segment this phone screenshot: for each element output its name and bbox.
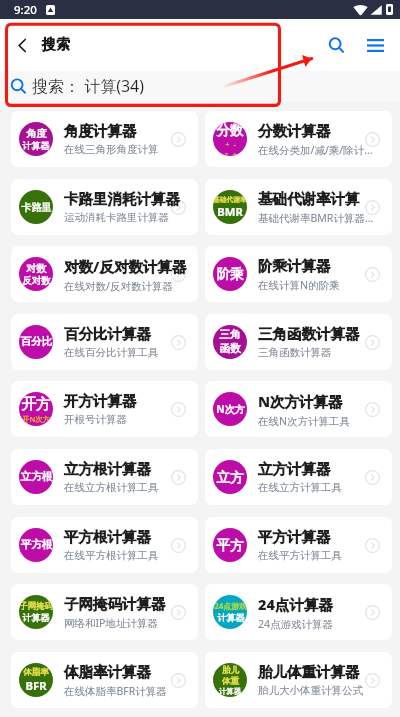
staticText: 24点游戏计算器 — [258, 617, 334, 631]
staticText: 在线立方根计算工具 — [64, 481, 159, 494]
staticText: 反对数 — [22, 275, 51, 287]
staticText: 子网掩码 — [19, 601, 53, 612]
staticText: 胎儿大小体重计算公式 — [258, 684, 363, 697]
staticText: 立方根计算器 — [64, 460, 151, 478]
staticText: 卡路里消耗计算器 — [64, 190, 180, 208]
staticText: 在线百分比计算工具 — [64, 346, 159, 359]
staticText: 开N次方 — [22, 414, 50, 424]
staticText: 计算器 — [22, 612, 50, 623]
staticText: 分数计算器 — [258, 122, 331, 140]
staticText: 立方 — [216, 469, 244, 486]
staticText: 对数 — [26, 262, 47, 275]
staticText: 运动消耗卡路里计算器 — [64, 211, 169, 224]
staticText: + - — [225, 139, 236, 149]
staticText: 在线平方根计算工具 — [64, 549, 159, 562]
staticText: 三角 — [219, 328, 241, 342]
staticText: 平方 — [216, 537, 244, 554]
staticText: 在线对数/反对数计算器 — [64, 279, 173, 293]
staticText: 24点计算器 — [258, 594, 333, 614]
staticText: 对数/反对数计算器 — [64, 256, 187, 276]
staticText: 阶乘 — [216, 266, 244, 283]
button[interactable]: 阶乘 — [205, 246, 392, 302]
staticText: 9:20 — [14, 2, 37, 18]
staticText: 阶乘计算器 — [258, 257, 331, 275]
button[interactable]: 卡路里 — [11, 179, 198, 235]
staticText: 基础代谢率 — [213, 195, 247, 204]
staticText: 百分比 — [20, 335, 53, 349]
button[interactable]: 24点游戏 — [205, 584, 392, 640]
staticText: 在线立方计算工具 — [258, 481, 342, 494]
staticText: BMR — [217, 204, 243, 219]
button[interactable]: 平方根 — [11, 517, 198, 573]
staticText: 平方根 — [20, 538, 53, 552]
button[interactable]: 分数 — [205, 111, 392, 167]
staticText: 平方根计算器 — [64, 528, 151, 546]
staticText: 开方计算器 — [64, 392, 137, 410]
staticText: 百分比计算器 — [64, 325, 151, 343]
button[interactable]: 立方 — [205, 449, 392, 505]
staticText: 子网掩码计算器 — [64, 595, 166, 613]
staticText: N次方计算器 — [258, 391, 343, 411]
staticText: 基础代谢率计算 — [258, 190, 360, 208]
button[interactable]: 对数 — [11, 246, 198, 302]
staticText: 三角函数计算器 — [258, 346, 332, 359]
button[interactable]: 胎儿 — [205, 652, 392, 708]
button[interactable]: N次方 — [205, 381, 392, 437]
staticText: 网络和IP地址计算器 — [64, 616, 158, 630]
staticText: × ÷ — [224, 149, 237, 156]
button[interactable]: 立方根 — [11, 449, 198, 505]
button[interactable]: 体脂率 — [11, 652, 198, 708]
staticText: 计算器 — [217, 612, 245, 623]
button[interactable]: Back — [10, 33, 34, 57]
staticText: 胎儿体重计算器 — [258, 663, 360, 681]
button[interactable]: 百分比 — [11, 314, 198, 370]
button[interactable]: 开方 — [11, 381, 198, 437]
button[interactable]: 子网掩码 — [11, 584, 198, 640]
staticText: 计算器 — [219, 687, 241, 696]
staticText: 角度计算器 — [64, 122, 137, 140]
staticText: 在线体脂率BFR计算器 — [64, 684, 167, 698]
staticText: 搜索 — [42, 36, 70, 54]
staticText: 立方根 — [20, 470, 53, 484]
staticText: 胎儿 — [222, 665, 239, 676]
staticText: 函数 — [219, 342, 241, 356]
staticText: 卡路里 — [21, 201, 52, 214]
staticText: 在线三角形角度计算 — [64, 143, 159, 156]
button[interactable]: 角度 — [11, 111, 198, 167]
button[interactable]: 三角 — [205, 314, 392, 370]
staticText: BFR — [25, 678, 47, 693]
staticText: 基础代谢率BMR计算器… — [258, 211, 374, 225]
staticText: 角度 — [26, 127, 47, 140]
staticText: 体脂率 — [23, 667, 49, 678]
staticText: 计算器 — [22, 140, 50, 151]
staticText: 开方 — [21, 395, 51, 414]
staticText: 在线平方计算工具 — [258, 549, 342, 562]
staticText: 在线计算N的阶乘 — [258, 278, 340, 292]
staticText: 体脂率计算器 — [64, 663, 151, 681]
staticText: 24点游戏 — [214, 601, 247, 612]
staticText: 开根号计算器 — [64, 413, 127, 426]
staticText: 立方计算器 — [258, 460, 331, 478]
staticText: 在线N次方计算工具 — [258, 414, 350, 428]
button[interactable]: Search — [322, 31, 350, 59]
button[interactable]: Menu — [361, 31, 389, 59]
staticText: 平方计算器 — [258, 528, 331, 546]
staticText: 在线分类加/减/乘/除计… — [258, 143, 373, 157]
button[interactable]: 搜索： 计算(34) — [0, 71, 400, 101]
staticText: 体重 — [222, 676, 239, 687]
button[interactable]: 基础代谢率 — [205, 179, 392, 235]
staticText: N次方 — [216, 402, 245, 416]
button[interactable]: 平方 — [205, 517, 392, 573]
staticText: 三角函数计算器 — [258, 325, 360, 343]
staticText: 分数 — [216, 122, 244, 139]
staticText: 搜索： 计算(34) — [32, 75, 145, 97]
